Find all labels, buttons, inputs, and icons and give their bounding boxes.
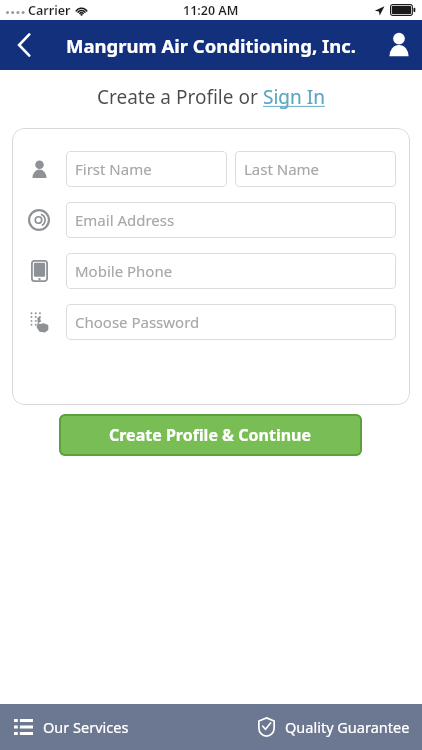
button[interactable]: Sign In xyxy=(263,84,325,110)
staticText: Create Profile & Continue xyxy=(109,424,312,446)
staticText: Quality Guarantee xyxy=(285,717,410,737)
staticText: Mangrum Air Conditioning, Inc. xyxy=(66,33,356,58)
staticText: Mobile Phone xyxy=(75,261,173,281)
staticText: Choose Password xyxy=(75,312,200,332)
staticText: First Name xyxy=(75,159,152,179)
staticText: Our Services xyxy=(43,717,129,737)
staticText: 11:20 AM xyxy=(183,2,239,19)
staticText: Last Name xyxy=(244,159,320,179)
staticText: Carrier xyxy=(28,2,71,19)
staticText: Email Address xyxy=(75,210,175,230)
button[interactable]: Our Services xyxy=(0,704,211,750)
staticText: Create a Profile or xyxy=(97,84,263,110)
staticText: Sign In xyxy=(263,84,325,110)
button[interactable]: Last Name xyxy=(235,151,396,187)
button[interactable]: Mobile Phone xyxy=(66,253,396,289)
button[interactable]: Choose Password xyxy=(66,304,396,340)
button[interactable]: Account xyxy=(376,20,422,70)
button[interactable]: First Name xyxy=(66,151,227,187)
button[interactable]: Quality Guarantee xyxy=(211,704,422,750)
button[interactable]: Back xyxy=(0,20,48,70)
button[interactable]: Email Address xyxy=(66,202,396,238)
button[interactable]: Create Profile & Continue xyxy=(59,414,362,456)
